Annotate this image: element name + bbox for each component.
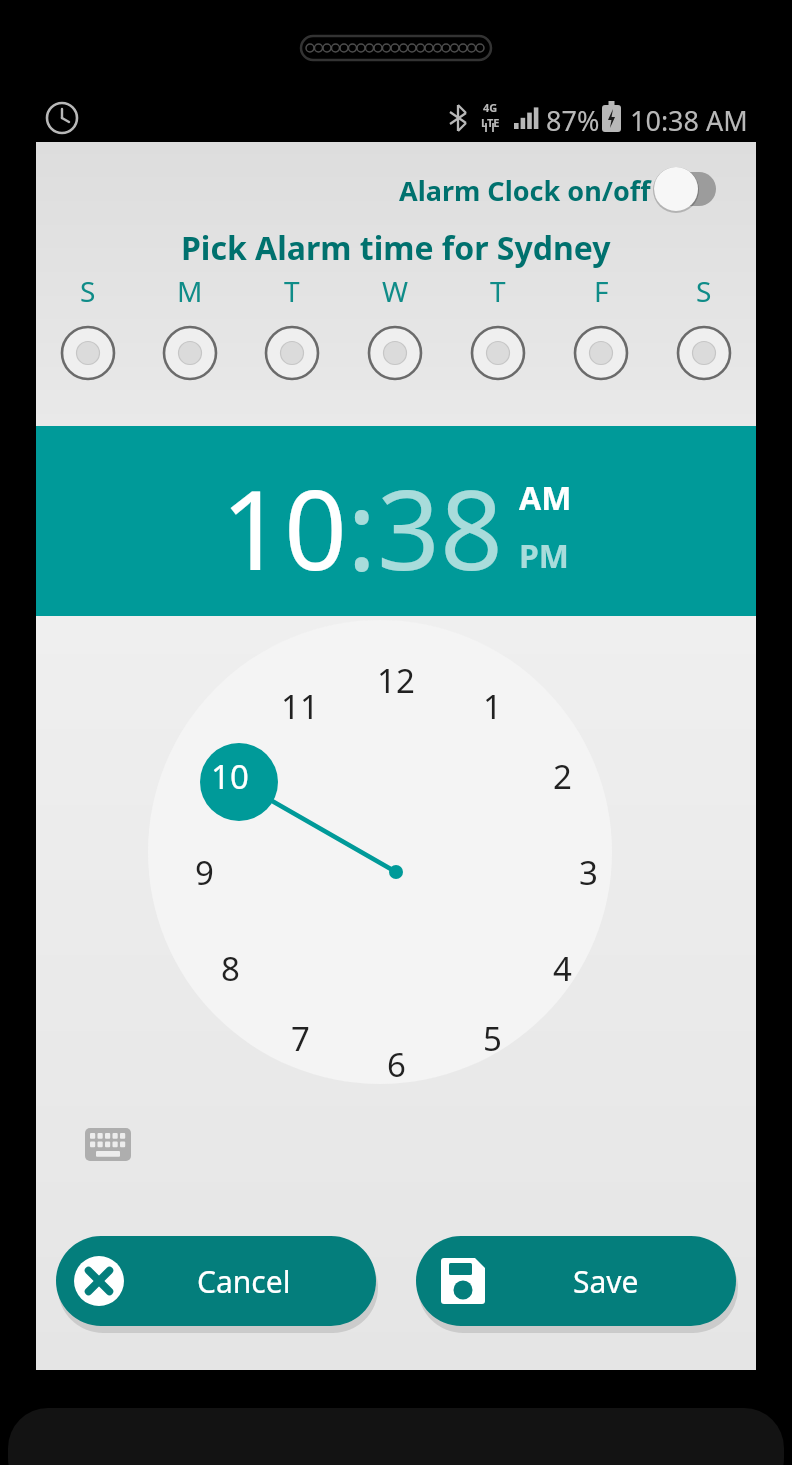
staticText: F [594, 272, 609, 310]
staticText: LTE [481, 115, 500, 130]
button[interactable]: 7 [270, 1016, 330, 1060]
button[interactable]: T [256, 272, 328, 386]
button[interactable]: 1 [462, 684, 522, 728]
button[interactable]: 8 [200, 946, 260, 990]
staticText: 5 [483, 1016, 502, 1060]
staticText: 6 [387, 1042, 406, 1086]
button[interactable]: Save [416, 1236, 736, 1326]
button[interactable]: S [668, 272, 740, 386]
staticText: T [490, 272, 506, 310]
button[interactable]: W [359, 272, 431, 386]
staticText: 8 [221, 946, 240, 990]
staticText: 10 [221, 452, 347, 602]
staticText: 12 [377, 658, 415, 702]
staticText: 4G [483, 100, 498, 115]
staticText: 3 [579, 850, 598, 894]
staticText: : [347, 452, 377, 602]
staticText: Cancel [197, 1261, 291, 1302]
button[interactable]: 11 [270, 684, 330, 728]
staticText: 10:38 AM [630, 102, 748, 139]
staticText: Pick Alarm time for Sydney [181, 226, 611, 270]
staticText: 7 [291, 1016, 310, 1060]
button[interactable]: 5 [462, 1016, 522, 1060]
staticText: AM [519, 476, 572, 520]
staticText: S [696, 272, 712, 310]
staticText: 9 [195, 850, 214, 894]
staticText: 38 [377, 452, 503, 602]
staticText: S [80, 272, 96, 310]
button[interactable]: 10 [221, 452, 347, 602]
staticText: 1 [483, 684, 502, 728]
button[interactable]: F [565, 272, 637, 386]
staticText: 87% [546, 102, 600, 139]
button[interactable]: 9 [174, 850, 234, 894]
staticText: T [284, 272, 300, 310]
button[interactable]: 6 [366, 1042, 426, 1086]
staticText: 4 [553, 946, 572, 990]
button[interactable]: M [154, 272, 226, 386]
button[interactable]: 10 [200, 754, 260, 798]
staticText: M [177, 272, 203, 310]
button[interactable]: 38 [377, 452, 503, 602]
button[interactable]: Alarm Clock on/off [399, 170, 719, 210]
staticText: 11 [281, 684, 319, 728]
button[interactable]: 12 [366, 658, 426, 702]
button[interactable]: PM [519, 534, 570, 578]
button[interactable]: Cancel [56, 1236, 376, 1326]
button[interactable]: S [52, 272, 124, 386]
staticText: PM [519, 534, 570, 578]
staticText: W [382, 272, 409, 310]
staticText: 10 [211, 754, 249, 798]
button[interactable]: 4 [532, 946, 592, 990]
button[interactable]: 2 [532, 754, 592, 798]
staticText: Save [573, 1261, 639, 1302]
button[interactable]: 3 [558, 850, 618, 894]
staticText: Alarm Clock on/off [399, 172, 651, 209]
button[interactable]: Switch to keyboard input [80, 1122, 138, 1168]
button[interactable]: T [462, 272, 534, 386]
staticText: 2 [553, 754, 572, 798]
button[interactable]: AM [519, 476, 572, 520]
